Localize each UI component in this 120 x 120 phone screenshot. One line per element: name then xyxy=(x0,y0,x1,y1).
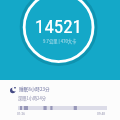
staticText: 01:26 xyxy=(17,112,25,116)
other: Sleep xyxy=(10,87,16,93)
button[interactable]: Sleep xyxy=(0,80,120,116)
staticText: 睡眠8小時23分 xyxy=(19,86,50,93)
staticText: 14521 xyxy=(35,15,82,37)
staticText: 深眠1小時24分 xyxy=(18,95,46,101)
staticText: 09:48 xyxy=(97,112,105,116)
staticText: 9.7公里 | 470大卡 xyxy=(43,38,77,44)
